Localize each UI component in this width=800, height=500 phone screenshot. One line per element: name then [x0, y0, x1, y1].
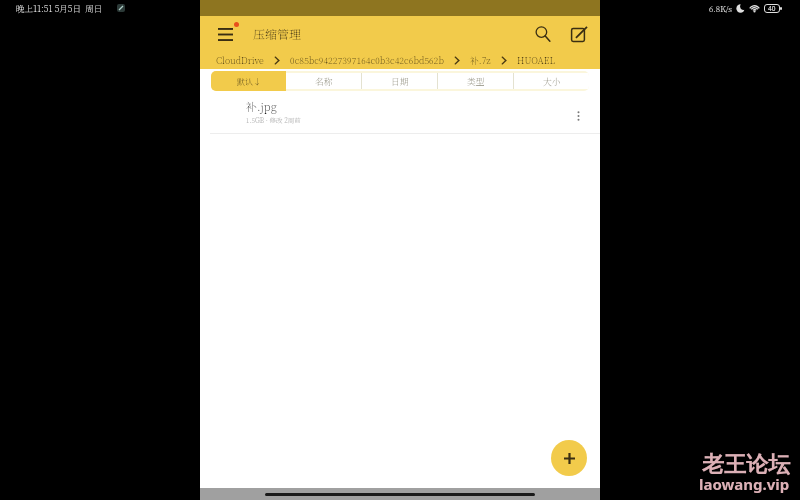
button[interactable]: 补.jpg [200, 99, 600, 134]
button[interactable]: 默认↓ [211, 71, 286, 91]
staticText: 40 [768, 4, 776, 13]
staticText: 晚上11:51 5月5日 周日 [16, 2, 103, 14]
button[interactable]: More options [569, 107, 587, 125]
button[interactable]: 名称 [286, 73, 361, 89]
staticText: 压缩管理 [253, 25, 302, 42]
button[interactable]: CloudDrive [216, 54, 264, 67]
staticText: 类型 [467, 75, 485, 88]
button[interactable]: 日期 [362, 73, 437, 89]
staticText: 日期 [391, 75, 409, 88]
button[interactable]: 类型 [438, 73, 513, 89]
button[interactable]: Menu [212, 21, 238, 47]
button[interactable]: HUOAEL [517, 54, 555, 67]
staticText: 名称 [315, 75, 333, 88]
button[interactable]: New archive [565, 21, 591, 47]
button[interactable]: Add [551, 440, 587, 476]
button[interactable]: 补.7z [470, 54, 491, 67]
staticText: 1.5GB · 修改 2周前 [246, 116, 301, 125]
button[interactable]: 0c85bc94227397164c0b3c42c6bd562b [290, 54, 444, 67]
staticText: 6.8K/s [709, 3, 733, 14]
staticText: 默认↓ [237, 76, 261, 87]
staticText: laowang.vip [699, 474, 790, 494]
staticText: 补.jpg [246, 98, 277, 114]
staticText: 大小 [543, 75, 561, 88]
staticText: 老王论坛 [702, 451, 790, 479]
button[interactable]: 大小 [514, 73, 589, 89]
button[interactable]: Search [530, 21, 556, 47]
